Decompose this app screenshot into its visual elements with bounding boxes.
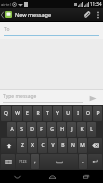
staticText: airtel bbox=[1, 2, 11, 7]
staticText: B bbox=[61, 142, 65, 149]
button[interactable]: K bbox=[77, 122, 86, 137]
staticText: R bbox=[36, 110, 40, 117]
button[interactable]: More options bbox=[93, 8, 103, 21]
staticText: S bbox=[20, 126, 23, 133]
button[interactable]: A bbox=[7, 122, 16, 137]
button[interactable]: Send bbox=[86, 91, 100, 105]
staticText: G bbox=[50, 126, 54, 133]
button[interactable]: U bbox=[63, 106, 72, 121]
button[interactable]: , bbox=[31, 154, 39, 169]
button[interactable]: M bbox=[78, 138, 87, 153]
staticText: , bbox=[34, 158, 36, 165]
button[interactable]: Recent apps bbox=[69, 170, 103, 183]
staticText: A bbox=[10, 126, 14, 133]
staticText: X bbox=[31, 142, 34, 149]
staticText: H bbox=[60, 126, 64, 133]
staticText: 11:34 bbox=[90, 1, 102, 7]
button[interactable]: O bbox=[83, 106, 92, 121]
button[interactable]: R bbox=[33, 106, 42, 121]
staticText: Type message bbox=[3, 93, 37, 100]
button[interactable]: P bbox=[93, 106, 102, 121]
button[interactable]: B bbox=[58, 138, 67, 153]
button[interactable]: J bbox=[67, 122, 76, 137]
button[interactable]: L bbox=[87, 122, 96, 137]
button[interactable]: V bbox=[48, 138, 57, 153]
button[interactable]: Navigate up bbox=[0, 8, 13, 21]
button[interactable]: G bbox=[47, 122, 56, 137]
button[interactable]: D bbox=[27, 122, 36, 137]
button[interactable]: Space bbox=[40, 154, 78, 169]
button[interactable]: C bbox=[38, 138, 47, 153]
button[interactable]: Symbols bbox=[16, 154, 30, 169]
staticText: ?123 bbox=[19, 159, 27, 164]
staticText: . bbox=[82, 158, 84, 165]
staticText: Y bbox=[56, 110, 59, 117]
button[interactable]: N bbox=[68, 138, 77, 153]
button[interactable]: Back bbox=[0, 170, 35, 183]
staticText: W bbox=[15, 110, 20, 117]
staticText: E bbox=[26, 110, 29, 117]
staticText: V bbox=[51, 142, 55, 149]
button[interactable]: Shift bbox=[1, 138, 16, 153]
button[interactable]: Q bbox=[1, 106, 11, 121]
button[interactable]: . bbox=[79, 154, 87, 169]
button[interactable]: S bbox=[17, 122, 26, 137]
button[interactable]: Attach bbox=[79, 8, 93, 21]
staticText: U bbox=[66, 110, 70, 117]
staticText: J bbox=[71, 126, 73, 133]
button[interactable]: To bbox=[0, 22, 103, 39]
button[interactable]: I bbox=[73, 106, 82, 121]
button[interactable]: H bbox=[57, 122, 66, 137]
button[interactable]: Keyboard settings bbox=[1, 154, 15, 169]
staticText: L bbox=[90, 126, 93, 133]
staticText: K bbox=[80, 126, 84, 133]
staticText: I bbox=[77, 110, 79, 117]
button[interactable]: Type message bbox=[3, 93, 83, 103]
staticText: F bbox=[40, 126, 43, 133]
button[interactable]: X bbox=[28, 138, 37, 153]
staticText: T bbox=[46, 110, 49, 117]
button[interactable]: F bbox=[37, 122, 46, 137]
button[interactable]: Delete bbox=[88, 138, 102, 153]
staticText: Z bbox=[21, 142, 24, 149]
button[interactable]: T bbox=[43, 106, 52, 121]
staticText: P bbox=[96, 110, 100, 117]
button[interactable]: Home bbox=[35, 170, 69, 183]
staticText: New message bbox=[15, 11, 79, 18]
button[interactable]: Z bbox=[17, 138, 27, 153]
button[interactable]: E bbox=[23, 106, 32, 121]
staticText: Q bbox=[4, 110, 8, 117]
staticText: D bbox=[30, 126, 34, 133]
button[interactable]: Enter bbox=[88, 154, 102, 169]
staticText: O bbox=[86, 110, 90, 117]
staticText: M bbox=[80, 142, 85, 149]
staticText: N bbox=[71, 142, 75, 149]
button[interactable]: W bbox=[12, 106, 22, 121]
staticText: To bbox=[4, 26, 10, 33]
button[interactable]: Y bbox=[53, 106, 62, 121]
staticText: C bbox=[41, 142, 45, 149]
